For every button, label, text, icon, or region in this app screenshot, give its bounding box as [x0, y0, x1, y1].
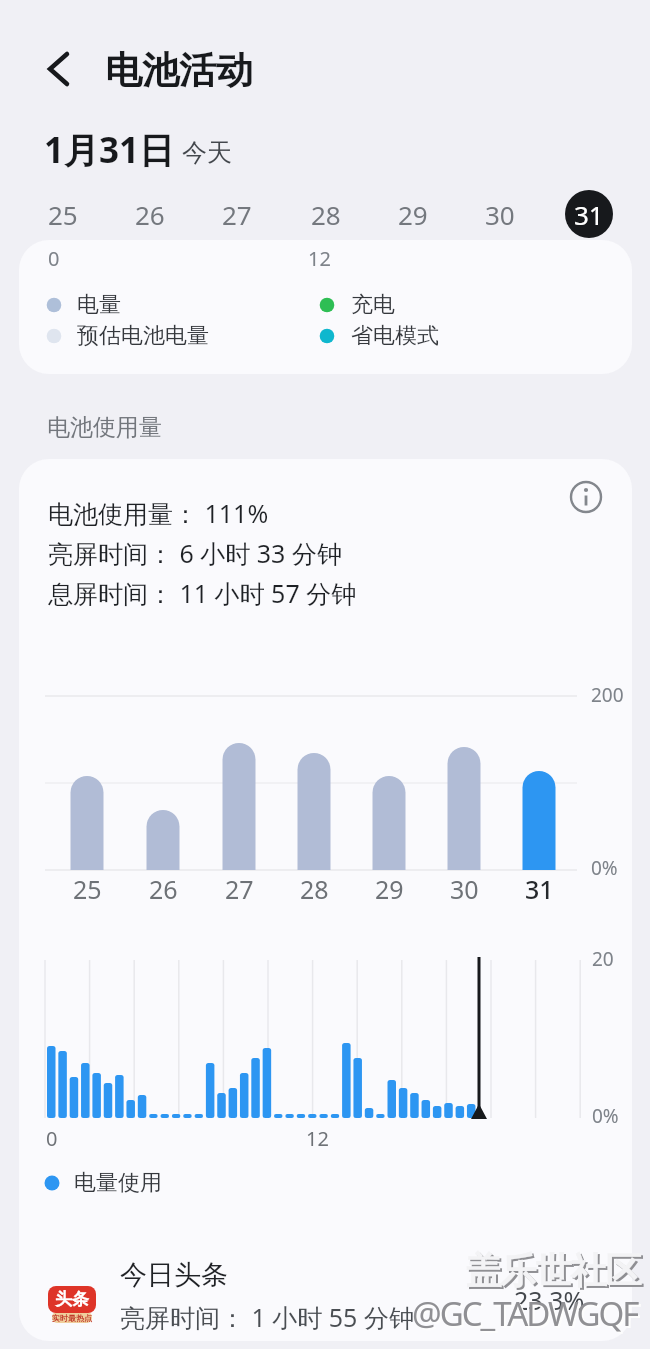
staticText: 27: [225, 872, 254, 906]
staticText: 28: [300, 872, 329, 906]
staticText: 实时最热点: [52, 1313, 92, 1323]
staticText: 充电: [351, 291, 395, 319]
staticText: 盖乐世社区: [466, 1248, 641, 1293]
staticText: 20: [592, 946, 614, 972]
staticText: 预估电池电量: [77, 322, 209, 350]
staticText: @GC_TADWGQF: [414, 1293, 640, 1338]
staticText: 1月31日: [44, 126, 175, 174]
staticText: 电池使用量: [47, 413, 162, 442]
staticText: 0%: [592, 1103, 619, 1129]
staticText: 0%: [591, 855, 618, 881]
staticText: 31: [525, 872, 554, 906]
staticText: 26: [135, 197, 165, 232]
staticText: 电量使用: [74, 1169, 162, 1197]
staticText: 省电模式: [351, 322, 439, 350]
staticText: 盖乐世社区: [468, 1250, 643, 1295]
staticText: 亮屏时间： 6 小时 33 分钟: [48, 536, 342, 570]
staticText: 25: [73, 872, 102, 906]
staticText: 26: [149, 872, 178, 906]
staticText: 28: [311, 197, 341, 232]
staticText: 0: [48, 245, 60, 272]
staticText: 30: [450, 872, 479, 906]
staticText: @GC_TADWGQF: [412, 1291, 638, 1336]
staticText: 头条: [55, 1289, 89, 1310]
staticText: 电量: [77, 291, 121, 319]
staticText: 亮屏时间： 1 小时 55 分钟: [120, 1300, 414, 1334]
staticText: 30: [485, 197, 515, 232]
staticText: 23.3%: [514, 1283, 585, 1317]
staticText: 200: [591, 682, 624, 708]
staticText: 25: [48, 197, 78, 232]
staticText: 电池使用量： 111%: [48, 496, 269, 530]
staticText: 息屏时间： 11 小时 57 分钟: [48, 576, 357, 610]
staticText: 今天: [182, 137, 232, 168]
staticText: 31: [574, 197, 604, 232]
staticText: 29: [375, 872, 404, 906]
staticText: 电池活动: [105, 47, 253, 94]
staticText: 29: [398, 197, 428, 232]
staticText: 12: [308, 245, 331, 272]
staticText: 今日头条: [120, 1258, 228, 1292]
staticText: 12: [306, 1125, 329, 1152]
staticText: 27: [222, 197, 252, 232]
staticText: 0: [46, 1125, 58, 1152]
